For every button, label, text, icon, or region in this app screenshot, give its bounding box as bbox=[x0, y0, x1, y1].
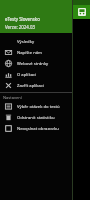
button[interactable]: Tests bbox=[74, 5, 90, 19]
staticText: Verze: 2024.03 bbox=[5, 24, 35, 30]
button[interactable]: Výběr otázek do testů bbox=[0, 101, 72, 112]
staticText: Odstranit statistiku bbox=[17, 115, 55, 121]
button[interactable]: Webové stránky bbox=[0, 58, 72, 69]
button[interactable]: Neoqsínat obrazovku bbox=[0, 123, 72, 134]
button[interactable]: eTesty Slovensko bbox=[0, 0, 72, 33]
staticText: O aplikaci bbox=[17, 72, 37, 78]
button[interactable]: Back bbox=[0, 5, 14, 19]
staticText: Nastavení bbox=[3, 95, 22, 100]
staticText: Zavřít aplikaci bbox=[17, 83, 45, 89]
button[interactable]: Odstranit statistiku bbox=[0, 112, 72, 123]
button[interactable]: Zavřít aplikaci bbox=[0, 80, 72, 91]
staticText: Webové stránky bbox=[17, 61, 49, 67]
staticText: eTesty Slovensko bbox=[5, 16, 40, 22]
staticText: Výběr otázek do testů bbox=[17, 104, 60, 110]
button[interactable]: Napište nám bbox=[0, 47, 72, 58]
button[interactable]: O aplikaci bbox=[0, 69, 72, 80]
staticText: Neoqsínat obrazovku bbox=[17, 126, 59, 132]
staticText: Výsledky bbox=[17, 39, 35, 45]
button[interactable]: Výsledky bbox=[0, 36, 72, 47]
staticText: Napište nám bbox=[17, 50, 43, 56]
